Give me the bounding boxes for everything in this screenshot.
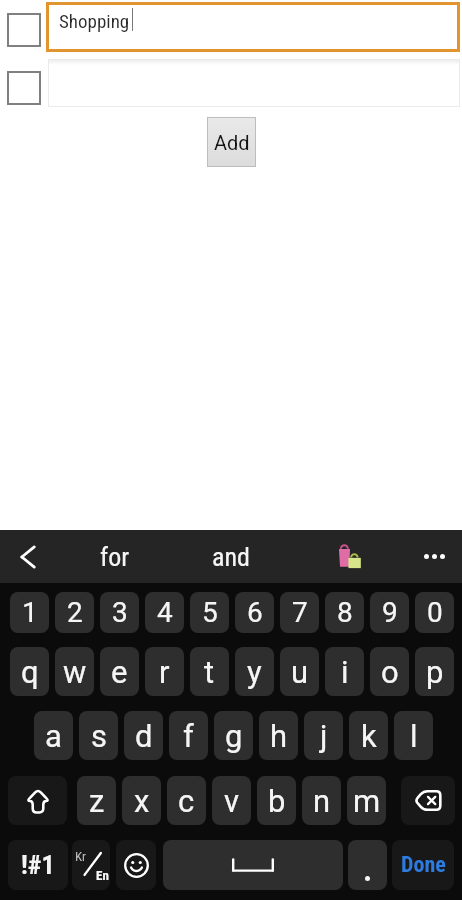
button[interactable]: 4 bbox=[145, 592, 184, 633]
staticText: e bbox=[111, 654, 128, 690]
staticText: d bbox=[135, 718, 153, 754]
staticText: c bbox=[178, 783, 195, 819]
button[interactable]: n bbox=[302, 776, 341, 825]
button[interactable]: v bbox=[212, 776, 251, 825]
button[interactable]: q bbox=[10, 647, 49, 696]
staticText: u bbox=[291, 654, 309, 690]
staticText: 7 bbox=[292, 596, 308, 629]
button[interactable]: 6 bbox=[235, 592, 274, 633]
button[interactable]: Done bbox=[392, 840, 454, 890]
button[interactable]: l bbox=[394, 711, 433, 760]
button[interactable]: for bbox=[75, 530, 155, 583]
staticText: p bbox=[426, 654, 444, 690]
button[interactable]: Add bbox=[207, 117, 256, 167]
button[interactable]: s bbox=[79, 711, 118, 760]
button[interactable]: Previous suggestions bbox=[2, 530, 54, 583]
button[interactable]: m bbox=[347, 776, 386, 825]
button[interactable]: Shopping bags emoji bbox=[312, 530, 386, 583]
staticText: n bbox=[313, 783, 331, 819]
staticText: i bbox=[341, 654, 349, 690]
staticText: for bbox=[100, 542, 130, 572]
button[interactable] bbox=[48, 59, 460, 107]
staticText: s bbox=[91, 718, 107, 754]
button[interactable]: w bbox=[55, 647, 94, 696]
button[interactable]: g bbox=[214, 711, 253, 760]
button[interactable]: Toggle item 1 bbox=[7, 13, 41, 47]
staticText: Done bbox=[401, 852, 446, 878]
button[interactable]: Switch language bbox=[72, 840, 110, 890]
button[interactable]: Space bbox=[163, 840, 343, 890]
button[interactable]: f bbox=[169, 711, 208, 760]
staticText: r bbox=[159, 654, 170, 690]
button[interactable]: 7 bbox=[280, 592, 319, 633]
staticText: k bbox=[361, 718, 377, 754]
button[interactable]: Toggle item 2 bbox=[7, 71, 41, 105]
staticText: a bbox=[45, 718, 62, 754]
button[interactable]: Emoji bbox=[116, 840, 156, 890]
staticText: l bbox=[410, 718, 418, 754]
button[interactable]: 0 bbox=[415, 592, 454, 633]
staticText: j bbox=[320, 718, 328, 754]
button[interactable]: Shift bbox=[8, 776, 67, 825]
staticText: !#1 bbox=[21, 850, 55, 880]
button[interactable]: 3 bbox=[100, 592, 139, 633]
button[interactable]: j bbox=[304, 711, 343, 760]
staticText: t bbox=[204, 654, 215, 690]
button[interactable]: e bbox=[100, 647, 139, 696]
staticText: f bbox=[183, 718, 194, 754]
staticText: m bbox=[353, 783, 381, 819]
staticText: h bbox=[270, 718, 288, 754]
button[interactable]: !#1 bbox=[8, 840, 68, 890]
staticText: 8 bbox=[337, 596, 353, 629]
staticText: 4 bbox=[157, 596, 173, 629]
staticText: z bbox=[89, 783, 105, 819]
staticText: 3 bbox=[112, 596, 128, 629]
staticText: 6 bbox=[247, 596, 263, 629]
staticText: Kr bbox=[75, 849, 87, 864]
button[interactable]: Shopping bbox=[46, 2, 460, 52]
staticText: o bbox=[381, 654, 399, 690]
button[interactable]: 9 bbox=[370, 592, 409, 633]
button[interactable]: 8 bbox=[325, 592, 364, 633]
button[interactable]: More options bbox=[410, 530, 458, 583]
button[interactable]: 5 bbox=[190, 592, 229, 633]
button[interactable]: 2 bbox=[55, 592, 94, 633]
button[interactable]: b bbox=[257, 776, 296, 825]
staticText: Add bbox=[214, 131, 250, 154]
button[interactable]: t bbox=[190, 647, 229, 696]
staticText: and bbox=[212, 542, 250, 572]
staticText: g bbox=[225, 718, 243, 754]
staticText: 5 bbox=[202, 596, 218, 629]
button[interactable]: i bbox=[325, 647, 364, 696]
button[interactable]: and bbox=[191, 530, 271, 583]
staticText: v bbox=[224, 783, 240, 819]
button[interactable]: p bbox=[415, 647, 454, 696]
staticText: 9 bbox=[382, 596, 398, 629]
button[interactable]: d bbox=[124, 711, 163, 760]
staticText: b bbox=[268, 783, 286, 819]
staticText: y bbox=[247, 654, 262, 690]
button[interactable]: o bbox=[370, 647, 409, 696]
button[interactable]: h bbox=[259, 711, 298, 760]
staticText: w bbox=[63, 654, 87, 690]
button[interactable] bbox=[348, 840, 387, 890]
staticText: x bbox=[134, 783, 150, 819]
staticText: q bbox=[21, 654, 39, 690]
button[interactable]: a bbox=[34, 711, 73, 760]
staticText: En bbox=[96, 868, 109, 883]
staticText: 0 bbox=[427, 596, 443, 629]
button[interactable]: Backspace bbox=[401, 776, 455, 825]
button[interactable]: c bbox=[167, 776, 206, 825]
button[interactable]: x bbox=[122, 776, 161, 825]
staticText: Shopping bbox=[59, 10, 130, 32]
button[interactable]: z bbox=[77, 776, 116, 825]
button[interactable]: r bbox=[145, 647, 184, 696]
button[interactable]: y bbox=[235, 647, 274, 696]
staticText: 1 bbox=[22, 596, 38, 629]
button[interactable]: u bbox=[280, 647, 319, 696]
button[interactable]: 1 bbox=[10, 592, 49, 633]
staticText: 2 bbox=[67, 596, 83, 629]
button[interactable]: k bbox=[349, 711, 388, 760]
